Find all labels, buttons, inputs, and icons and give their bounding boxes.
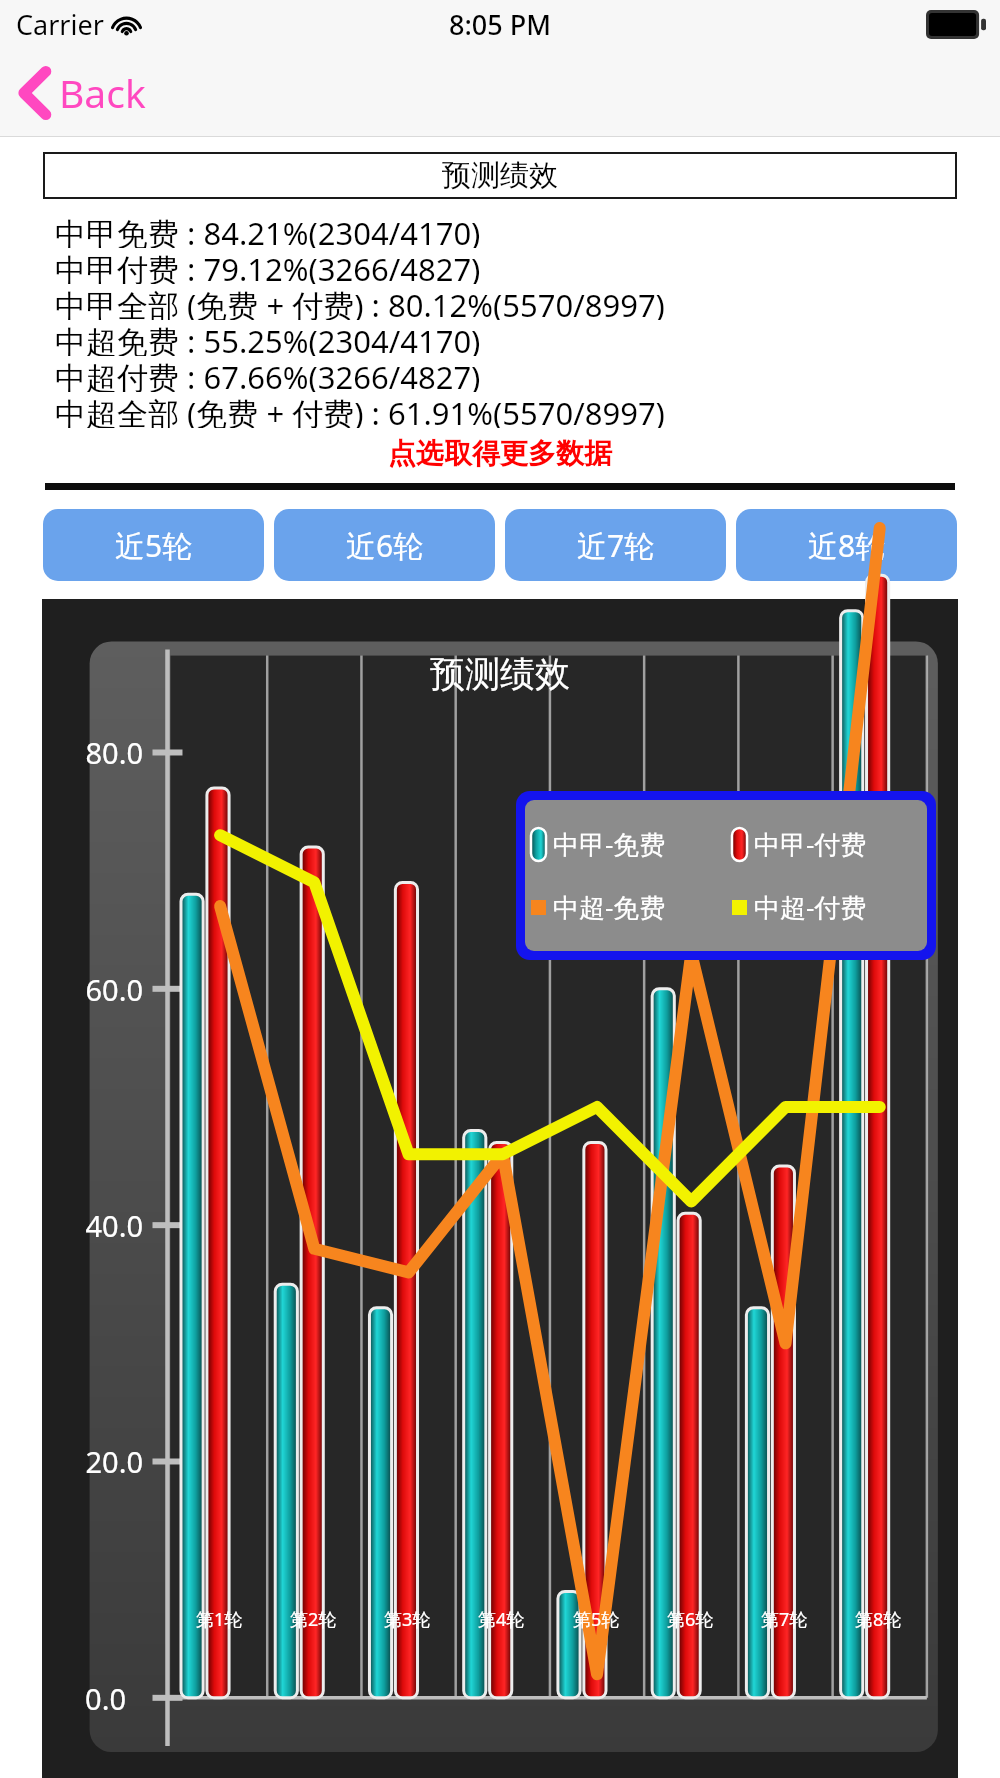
button[interactable]: 近8轮 (736, 509, 957, 581)
staticText: 第8轮 (855, 1607, 902, 1632)
button[interactable]: 近6轮 (274, 509, 495, 581)
staticText: 中甲全部 (免费 + 付费) : 80.12%(5570/8997) (55, 284, 665, 320)
staticText: 0.0 (85, 1679, 126, 1718)
staticText: 20.0 (85, 1442, 143, 1481)
staticText: 预测绩效 (442, 157, 558, 194)
staticText: 80.0 (85, 733, 143, 772)
button[interactable]: 预测绩效 chart (42, 599, 958, 1778)
staticText: 40.0 (85, 1206, 143, 1245)
staticText: 中超-付费 (754, 889, 867, 925)
button[interactable]: 近5轮 (43, 509, 264, 581)
staticText: 中甲-付费 (754, 826, 867, 862)
staticText: 第5轮 (573, 1607, 620, 1632)
staticText: 中甲免费 : 84.21%(2304/4170) (55, 212, 481, 248)
staticText: 近7轮 (577, 525, 655, 566)
staticText: 60.0 (85, 970, 143, 1009)
other: Back (20, 69, 50, 117)
staticText: 近5轮 (115, 525, 193, 566)
staticText: 中甲付费 : 79.12%(3266/4827) (55, 248, 481, 284)
staticText: 中超免费 : 55.25%(2304/4170) (55, 320, 481, 356)
staticText: 近8轮 (808, 525, 886, 566)
staticText: 第2轮 (290, 1607, 337, 1632)
staticText: 中超全部 (免费 + 付费) : 61.91%(5570/8997) (55, 392, 665, 428)
button[interactable]: 近7轮 (505, 509, 726, 581)
staticText: Back (59, 66, 146, 119)
staticText: 第4轮 (478, 1607, 525, 1632)
staticText: Carrier (16, 6, 104, 43)
staticText: 8:05 PM (449, 6, 551, 43)
staticText: 第7轮 (761, 1607, 808, 1632)
staticText: 中超付费 : 67.66%(3266/4827) (55, 356, 481, 392)
button[interactable]: Back (0, 56, 166, 129)
staticText: 第1轮 (196, 1607, 243, 1632)
staticText: 第3轮 (384, 1607, 431, 1632)
staticText: 中超-免费 (553, 889, 666, 925)
staticText: 点选取得更多数据 (0, 436, 1000, 471)
staticText: 近6轮 (346, 525, 424, 566)
staticText: 中甲-免费 (553, 826, 666, 862)
staticText: 第6轮 (667, 1607, 714, 1632)
staticText: 预测绩效 (430, 652, 570, 696)
